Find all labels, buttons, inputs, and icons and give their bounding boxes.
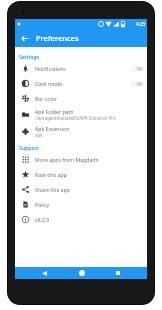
staticText: Notifications [35, 65, 66, 72]
staticText: 4:23 [136, 21, 146, 27]
staticText: Apk Extension [35, 125, 70, 132]
staticText: Apk Folder path [35, 108, 74, 115]
staticText: Dark mode [35, 80, 63, 87]
staticText: Settings [19, 53, 40, 60]
button[interactable]: v8.2.0 [15, 212, 147, 227]
button[interactable]: Apk Folder path [15, 106, 147, 123]
staticText: /storage/emulated/0/APK Extractor Pro [35, 115, 116, 121]
button[interactable]: Dark mode [15, 76, 147, 91]
staticText: Share this app [35, 186, 70, 193]
staticText: Bar color [35, 95, 58, 102]
staticText: More apps from Magdalm [35, 156, 99, 163]
button[interactable]: Bar color [15, 91, 147, 106]
button[interactable]: Back [37, 267, 52, 279]
button[interactable]: Notifications [15, 61, 147, 76]
staticText: apk [35, 132, 43, 138]
button[interactable]: Rate this app [15, 167, 147, 182]
staticText: Rate this app [35, 171, 67, 178]
button[interactable]: Apk Extension [15, 123, 147, 140]
button[interactable]: Share this app [15, 182, 147, 197]
staticText: Policy [35, 201, 50, 208]
button[interactable]: Home [74, 267, 89, 279]
button[interactable]: More apps from Magdalm [15, 152, 147, 167]
button[interactable]: Recents [110, 267, 125, 279]
staticText: v8.2.0 [35, 216, 50, 223]
staticText: Preferences [36, 33, 79, 43]
staticText: Support [19, 144, 39, 151]
button[interactable]: Policy [15, 197, 147, 212]
button[interactable]: Back [17, 31, 31, 45]
